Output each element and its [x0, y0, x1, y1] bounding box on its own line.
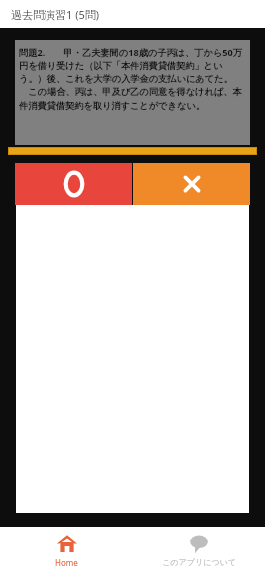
staticText: このアプリについて — [162, 557, 236, 567]
staticText: 問題2. 甲・乙夫妻間の18歳の子丙は、丁から50万円を借り受けた（以下「本件消… — [19, 46, 246, 112]
button[interactable]: Home — [0, 527, 132, 574]
button[interactable]: 正しい — [15, 163, 132, 205]
staticText: 過去問演習1 (5問) — [11, 7, 100, 22]
button[interactable]: 誤り — [133, 163, 250, 205]
staticText: Home — [55, 557, 78, 568]
button[interactable]: このアプリについて — [132, 527, 265, 574]
